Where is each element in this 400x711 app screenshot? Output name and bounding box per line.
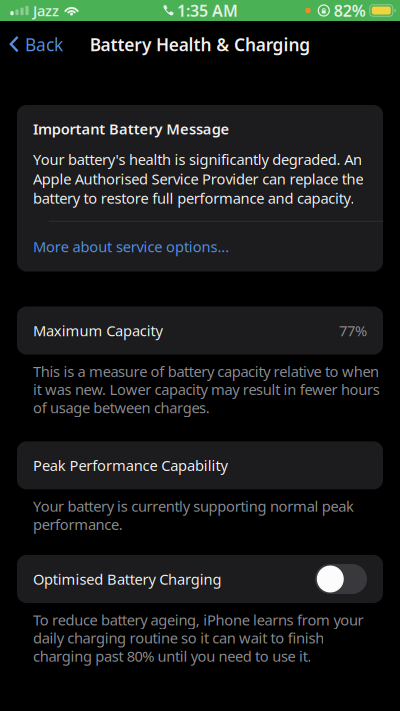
staticText: Maximum Capacity: [33, 321, 162, 340]
staticText: This is a measure of battery capacity re…: [33, 361, 380, 417]
staticText: Jazz: [33, 1, 59, 20]
button[interactable]: Optimised Battery Charging: [315, 564, 367, 594]
staticText: To reduce battery ageing, iPhone learns …: [33, 610, 364, 666]
button[interactable]: Back: [0, 25, 71, 64]
staticText: Your battery's health is significantly d…: [33, 149, 363, 208]
staticText: More about service options...: [33, 237, 229, 256]
staticText: Back: [25, 33, 63, 56]
button[interactable]: More about service options...: [17, 221, 383, 271]
staticText: Battery Health & Charging: [90, 33, 310, 56]
staticText: 82%: [334, 0, 366, 21]
staticText: Optimised Battery Charging: [33, 569, 221, 589]
staticText: Important Battery Message: [33, 119, 230, 138]
staticText: 77%: [339, 321, 367, 340]
staticText: Peak Performance Capability: [33, 456, 227, 475]
staticText: Your battery is currently supporting nor…: [33, 496, 354, 534]
staticText: 1:35 AM: [177, 0, 238, 21]
